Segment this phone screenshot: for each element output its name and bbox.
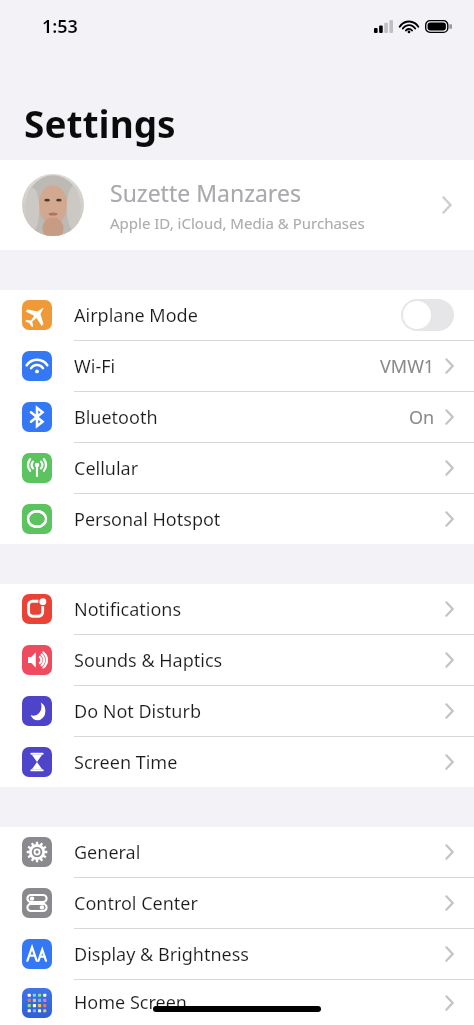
button[interactable]: General — [0, 827, 474, 877]
button[interactable]: Wi-Fi — [0, 341, 474, 391]
button[interactable]: Notifications — [0, 584, 474, 634]
staticText: General — [74, 840, 445, 865]
staticText: Cellular — [74, 456, 445, 481]
staticText: VMW1 — [380, 354, 435, 379]
staticText: Apple ID, iCloud, Media & Purchases — [110, 213, 365, 233]
button[interactable]: Screen Time — [0, 737, 474, 787]
button[interactable]: Control Center — [0, 878, 474, 928]
staticText: 1:53 — [42, 14, 78, 39]
staticText: Airplane Mode — [74, 303, 401, 328]
staticText: Settings — [24, 98, 176, 148]
staticText: Control Center — [74, 891, 445, 916]
button[interactable]: Home Screen — [0, 980, 474, 1025]
staticText: Notifications — [74, 597, 445, 622]
staticText: Screen Time — [74, 750, 445, 775]
button[interactable]: Airplane Mode — [0, 290, 474, 340]
staticText: Display & Brightness — [74, 942, 445, 967]
button[interactable]: Display & Brightness — [0, 929, 474, 979]
button[interactable]: Cellular — [0, 443, 474, 493]
staticText: Suzette Manzares — [110, 177, 301, 208]
staticText: Do Not Disturb — [74, 699, 445, 724]
button[interactable]: Bluetooth — [0, 392, 474, 442]
staticText: Bluetooth — [74, 405, 409, 430]
staticText: Sounds & Haptics — [74, 648, 445, 673]
button[interactable]: Sounds & Haptics — [0, 635, 474, 685]
button[interactable]: Suzette Manzares — [0, 160, 474, 250]
button[interactable]: Do Not Disturb — [0, 686, 474, 736]
staticText: Personal Hotspot — [74, 507, 445, 532]
button[interactable]: Airplane Mode toggle — [401, 299, 454, 331]
staticText: Home Screen — [74, 990, 445, 1015]
staticText: Wi-Fi — [74, 354, 380, 379]
staticText: On — [409, 405, 435, 430]
button[interactable]: Personal Hotspot — [0, 494, 474, 544]
